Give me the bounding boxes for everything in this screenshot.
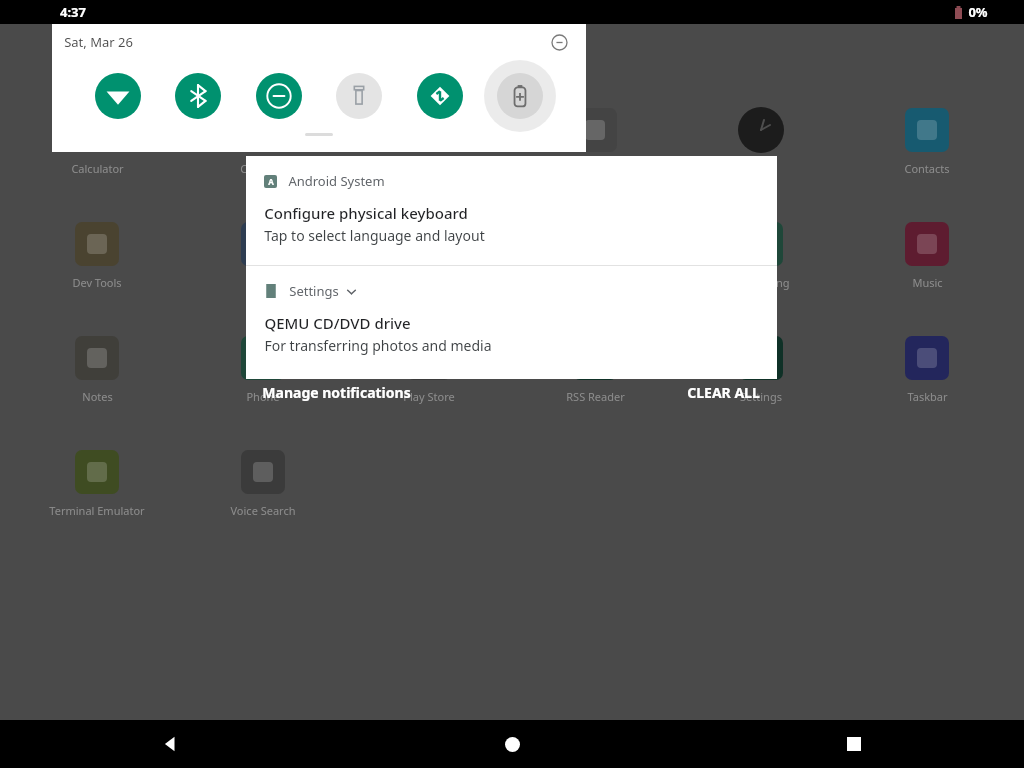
- button[interactable]: Notes: [37, 334, 157, 404]
- button[interactable]: Flashlight: [322, 59, 396, 133]
- button[interactable]: Back: [0, 720, 342, 768]
- staticText: Voice Search: [230, 503, 296, 518]
- staticText: Manage notifications: [262, 383, 411, 402]
- button[interactable]: Calendar: [203, 106, 323, 176]
- staticText: RSS Reader: [566, 389, 625, 404]
- staticText: A: [268, 176, 274, 187]
- staticText: Taskbar: [907, 389, 948, 404]
- button[interactable]: Dev Tools: [37, 220, 157, 290]
- staticText: Sat, Mar 26: [64, 33, 133, 51]
- button[interactable]: A: [246, 156, 777, 265]
- staticText: Settings: [740, 389, 782, 404]
- button[interactable]: Do not disturb: [242, 59, 316, 133]
- staticText: Play Store: [403, 389, 455, 404]
- staticText: Messaging: [733, 275, 790, 290]
- button[interactable]: Play Store: [369, 334, 489, 404]
- staticText: 4:37: [60, 3, 86, 21]
- staticText: Music: [912, 275, 943, 290]
- staticText: Configure physical keyboard: [264, 203, 468, 223]
- staticText: Notes: [82, 389, 113, 404]
- staticText: QEMU CD/DVD drive: [264, 313, 411, 333]
- button[interactable]: Taskbar: [867, 334, 987, 404]
- button[interactable]: Settings: [246, 266, 777, 379]
- button[interactable]: Calculator: [37, 106, 157, 176]
- button[interactable]: Files: [203, 220, 323, 290]
- staticText: Files: [252, 275, 275, 290]
- button[interactable]: Maps: [535, 220, 655, 290]
- button[interactable]: Terminal Emulator: [37, 448, 157, 518]
- button[interactable]: Home: [342, 720, 683, 768]
- button[interactable]: Settings: [701, 334, 821, 404]
- button[interactable]: Clock: [701, 106, 821, 176]
- staticText: Calculator: [71, 161, 124, 176]
- staticText: Terminal Emulator: [49, 503, 145, 518]
- button[interactable]: Voice Search: [203, 448, 323, 518]
- staticText: Calendar: [240, 161, 287, 176]
- staticText: Dev Tools: [72, 275, 122, 290]
- button[interactable]: Silence notifications: [546, 29, 572, 55]
- button[interactable]: RSS Reader: [535, 334, 655, 404]
- staticText: Android System: [288, 172, 385, 190]
- button[interactable]: Bluetooth: [161, 59, 235, 133]
- staticText: Tap to select language and layout: [264, 226, 485, 245]
- button[interactable]: Recent apps: [683, 720, 1024, 768]
- button[interactable]: Manage notifications: [262, 383, 411, 402]
- button[interactable]: Contacts: [867, 106, 987, 176]
- button[interactable]: Gallery: [369, 220, 489, 290]
- button[interactable]: Music: [867, 220, 987, 290]
- button[interactable]: Battery saver: [483, 59, 557, 133]
- button[interactable]: Camera: [369, 106, 489, 176]
- staticText: Contacts: [904, 161, 950, 176]
- staticText: 0%: [968, 3, 988, 21]
- staticText: Phone: [246, 389, 280, 404]
- staticText: CLEAR ALL: [687, 383, 760, 402]
- button[interactable]: CLEAR ALL: [687, 383, 760, 402]
- button[interactable]: Messaging: [701, 220, 821, 290]
- button[interactable]: Chrome: [535, 106, 655, 176]
- staticText: For transferring photos and media: [264, 336, 492, 355]
- button[interactable]: Wi-Fi: [81, 59, 155, 133]
- staticText: Settings: [289, 282, 339, 300]
- button[interactable]: Auto-rotate: [403, 59, 477, 133]
- button[interactable]: Phone: [203, 334, 323, 404]
